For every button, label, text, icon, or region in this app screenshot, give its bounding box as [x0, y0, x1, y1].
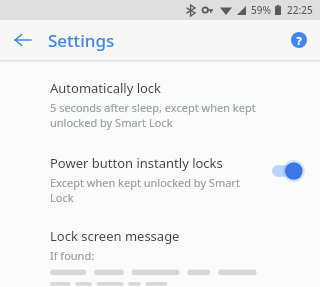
staticText: 5 seconds after sleep, except when kept	[50, 100, 256, 115]
staticText: ?	[296, 33, 302, 48]
button[interactable]: Automatically lock	[0, 77, 320, 132]
staticText: 59%	[251, 3, 271, 17]
staticText: unlocked by Smart Lock	[50, 115, 173, 130]
button[interactable]: Power button instantly locks toggle	[272, 160, 308, 182]
staticText: Power button instantly locks	[50, 154, 223, 172]
button[interactable]: Lock screen message	[0, 227, 320, 287]
staticText: Except when kept unlocked by Smart	[50, 175, 240, 190]
staticText: Settings	[48, 29, 115, 52]
button[interactable]: Help	[286, 27, 312, 53]
staticText: If found:	[50, 248, 95, 263]
staticText: 22:25	[287, 3, 313, 17]
button[interactable]: Power button instantly locks	[0, 152, 320, 207]
staticText: Lock screen message	[50, 227, 180, 245]
button[interactable]: Back	[10, 27, 36, 53]
staticText: Automatically lock	[50, 79, 162, 97]
staticText: Lock	[50, 190, 74, 205]
